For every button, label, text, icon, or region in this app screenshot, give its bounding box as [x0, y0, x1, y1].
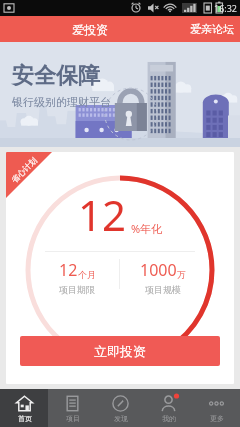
staticText: 1000 [140, 259, 177, 281]
staticText: 项目规模 [145, 284, 181, 295]
button[interactable]: 立即投资 [20, 336, 220, 366]
button[interactable]: 更多 [192, 389, 240, 427]
staticText: 项目 [66, 414, 80, 423]
staticText: 发现 [114, 414, 128, 423]
button[interactable]: 爱亲论坛 [180, 19, 240, 39]
staticText: 12 [59, 259, 78, 281]
staticText: %年化 [131, 221, 163, 236]
staticText: 爱亲论坛 [190, 22, 234, 36]
button[interactable]: 发现 [96, 389, 144, 427]
staticText: 银行级别的理财平台 [12, 95, 111, 109]
staticText: 更多 [210, 414, 224, 423]
staticText: 个月 [78, 269, 96, 280]
staticText: 爱投资 [72, 22, 108, 37]
staticText: 省心计划 [9, 155, 39, 185]
staticText: 安全保障 [12, 62, 100, 90]
button[interactable]: 首页 [0, 389, 48, 427]
staticText: 立即投资 [94, 343, 146, 359]
button[interactable]: 爱投资 [62, 19, 118, 40]
staticText: 12 [78, 186, 127, 243]
staticText: 首页 [18, 414, 32, 423]
staticText: 项目期限 [59, 284, 95, 295]
staticText: 万 [177, 269, 186, 280]
button[interactable]: 我的 [144, 389, 192, 427]
button[interactable]: 项目 [48, 389, 96, 427]
staticText: 16:32 [214, 2, 238, 14]
staticText: 我的 [162, 414, 176, 423]
